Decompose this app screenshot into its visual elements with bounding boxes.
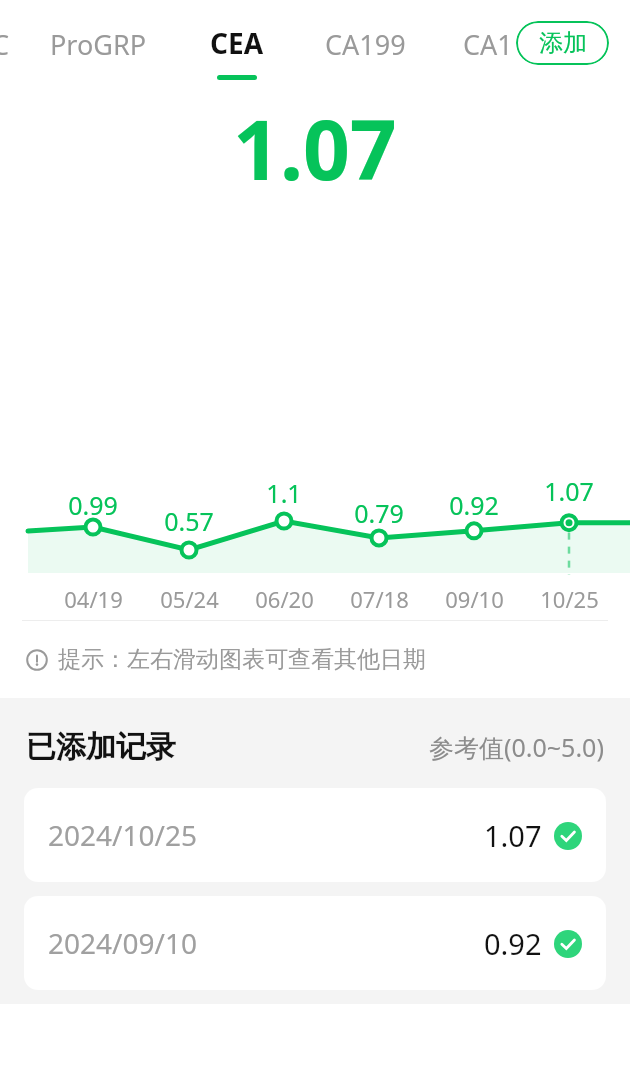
- button[interactable]: ProGRP: [50, 26, 147, 63]
- button[interactable]: CA1: [463, 26, 513, 63]
- staticText: 添加: [539, 28, 587, 58]
- other: Normal value: [554, 822, 582, 850]
- staticText: 07/18: [350, 584, 409, 614]
- staticText: 已添加记录: [26, 728, 176, 766]
- button[interactable]: C: [0, 26, 10, 63]
- staticText: 09/10: [445, 584, 504, 614]
- staticText: 提示：左右滑动图表可查看其他日期: [58, 645, 426, 674]
- staticText: 04/19: [64, 584, 123, 614]
- staticText: 参考值(0.0~5.0): [429, 730, 604, 764]
- staticText: 0.99: [68, 488, 118, 522]
- staticText: CEA: [210, 24, 264, 62]
- button[interactable]: 2024/09/10: [24, 896, 606, 990]
- staticText: 05/24: [160, 584, 219, 614]
- staticText: 2024/10/25: [48, 816, 197, 854]
- staticText: 0.57: [164, 504, 214, 538]
- button[interactable]: CA199: [325, 26, 406, 63]
- staticText: 1.07: [233, 92, 397, 204]
- staticText: 10/25: [540, 584, 599, 614]
- staticText: 06/20: [255, 584, 314, 614]
- staticText: 1.1: [266, 476, 302, 510]
- button[interactable]: 添加: [516, 21, 609, 65]
- other: Normal value: [554, 930, 582, 958]
- staticText: 2024/09/10: [48, 924, 197, 962]
- staticText: 1.07: [544, 474, 594, 508]
- staticText: 1.07: [484, 816, 542, 855]
- staticText: 0.79: [354, 496, 404, 530]
- staticText: 0.92: [484, 924, 542, 963]
- staticText: 0.92: [449, 488, 499, 522]
- button[interactable]: 2024/10/25: [24, 788, 606, 882]
- button[interactable]: CEA: [210, 24, 264, 80]
